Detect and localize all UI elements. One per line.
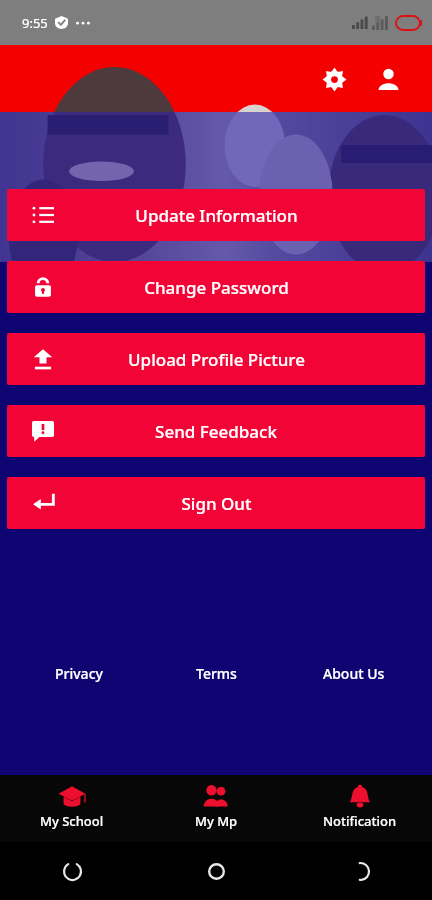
staticText: My Mp (195, 812, 238, 830)
staticText: About Us (323, 664, 385, 683)
staticText: Privacy (55, 664, 103, 683)
button[interactable]: About Us (313, 658, 395, 689)
button[interactable]: Terms (186, 658, 247, 689)
staticText: Sign Out (181, 492, 252, 515)
staticText: Upload Profile Picture (128, 348, 305, 371)
staticText: 9:55 (22, 14, 48, 32)
button[interactable]: Recents (52, 851, 92, 891)
button[interactable]: Send Feedback (7, 405, 425, 457)
staticText: Update Information (135, 204, 298, 227)
button[interactable]: Settings (312, 57, 356, 101)
button[interactable]: My School (0, 775, 144, 842)
staticText: Change Password (144, 276, 289, 299)
button[interactable]: Back (340, 851, 380, 891)
button[interactable]: Profile (366, 57, 410, 101)
button[interactable]: Notification (288, 775, 432, 842)
button[interactable]: Upload Profile Picture (7, 333, 425, 385)
button[interactable]: Privacy (45, 658, 113, 689)
button[interactable]: Sign Out (7, 477, 425, 529)
staticText: Notification (323, 812, 397, 830)
button[interactable]: Home (196, 851, 236, 891)
staticText: Send Feedback (155, 420, 277, 443)
staticText: Terms (196, 664, 237, 683)
button[interactable]: Change Password (7, 261, 425, 313)
button[interactable]: My Mp (144, 775, 288, 842)
staticText: My School (40, 812, 104, 830)
button[interactable]: Update Information (7, 189, 425, 241)
